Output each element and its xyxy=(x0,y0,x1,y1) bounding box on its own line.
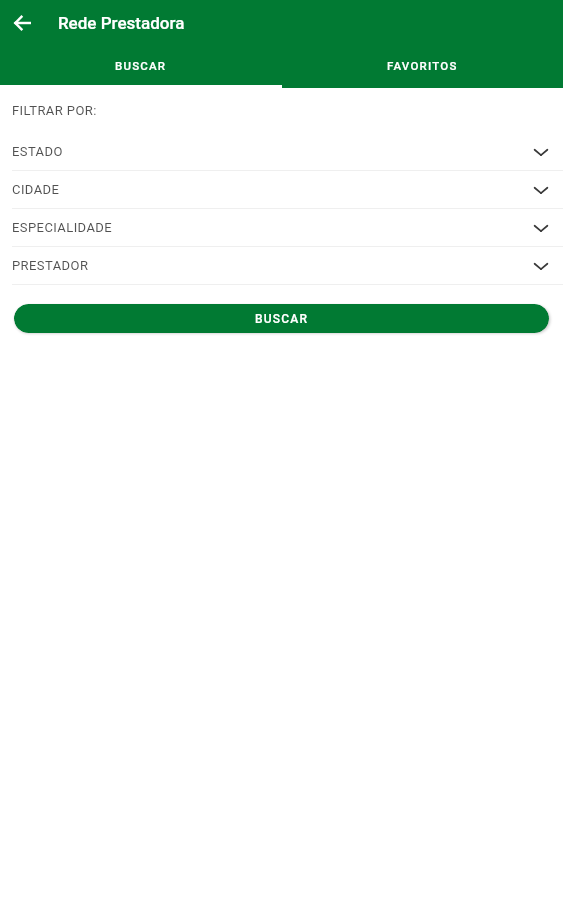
staticText: Rede Prestadora xyxy=(58,13,185,33)
button[interactable]: ESPECIALIDADE xyxy=(0,209,563,247)
button[interactable]: CIDADE xyxy=(0,171,563,209)
staticText: PRESTADOR xyxy=(12,258,89,273)
button[interactable]: Back xyxy=(0,1,44,45)
staticText: BUSCAR xyxy=(255,312,309,326)
button[interactable]: BUSCAR xyxy=(0,46,281,85)
staticText: ESTADO xyxy=(12,144,63,159)
staticText: BUSCAR xyxy=(115,59,167,72)
button[interactable]: BUSCAR xyxy=(14,304,549,333)
staticText: CIDADE xyxy=(12,182,60,197)
staticText: ESPECIALIDADE xyxy=(12,220,113,235)
staticText: FAVORITOS xyxy=(387,59,458,72)
staticText: FILTRAR POR: xyxy=(12,103,97,118)
button[interactable]: PRESTADOR xyxy=(0,247,563,285)
button[interactable]: ESTADO xyxy=(0,133,563,171)
button[interactable]: FAVORITOS xyxy=(281,46,563,85)
